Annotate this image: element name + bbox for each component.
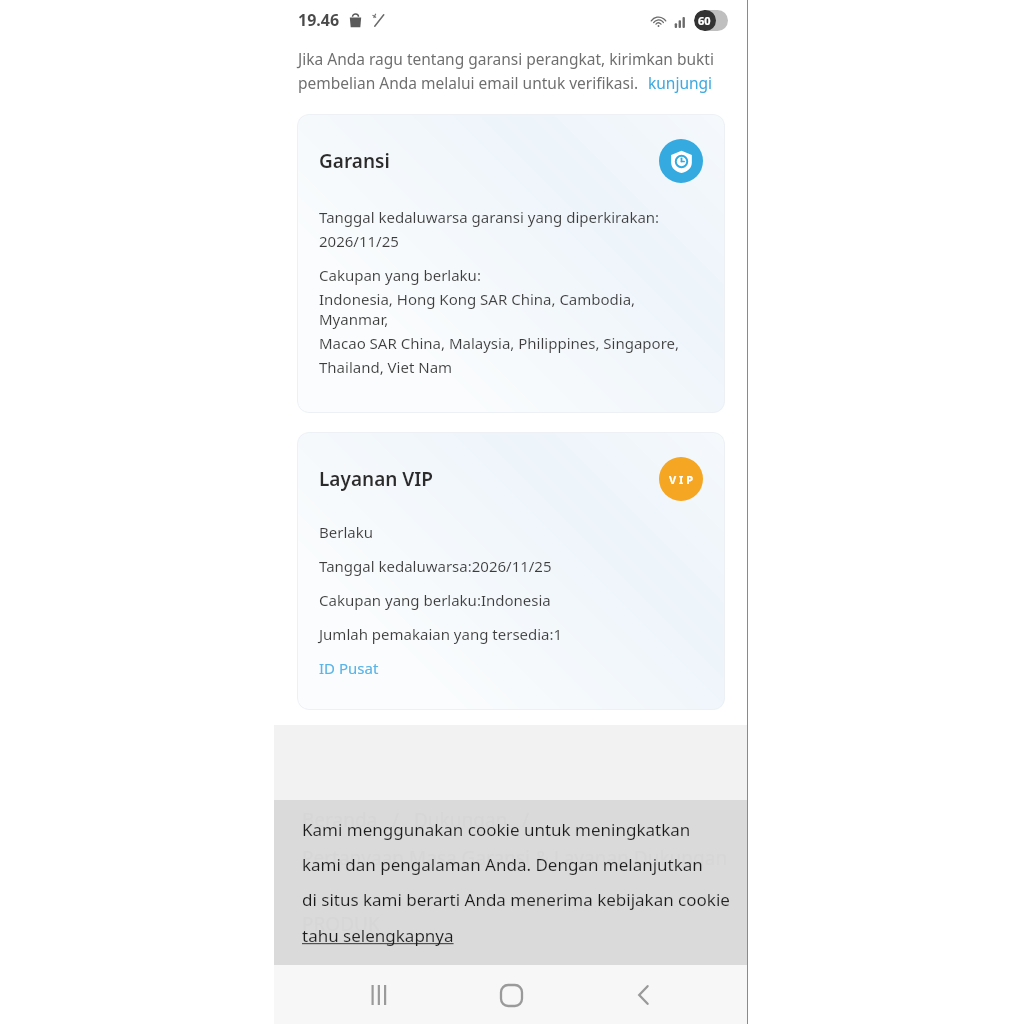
staticText: kami dan pengalaman Anda. Dengan melanju… <box>302 853 748 876</box>
staticText: Berlaku <box>319 522 373 542</box>
button[interactable]: tahu selengkapnya <box>302 924 454 947</box>
button[interactable]: Garansi <box>659 139 703 183</box>
staticText: / <box>522 807 530 833</box>
staticText: Cakupan yang berlaku: <box>319 265 481 285</box>
staticText: Beranda <box>302 807 378 833</box>
staticText: Layanan VIP <box>319 466 434 492</box>
staticText: Garansi <box>319 148 390 174</box>
staticText: ID Pusat <box>319 658 379 678</box>
staticText: Indonesia, Hong Kong SAR China, Cambodia… <box>319 289 703 329</box>
staticText: Macao SAR China, Malaysia, Philippines, … <box>319 333 680 353</box>
staticText: Tanggal kedaluwarsa:2026/11/25 <box>319 556 552 576</box>
staticText: Cakupan yang berlaku:Indonesia <box>319 590 551 610</box>
button[interactable]: Layanan VIP <box>297 432 725 710</box>
staticText: kunjungi <box>648 72 713 93</box>
staticText: 19.46 <box>298 9 340 31</box>
button[interactable]: Layanan VIP <box>659 457 703 501</box>
button[interactable]: kunjungi <box>648 72 713 93</box>
staticText: Kami menggunakan cookie untuk meningkatk… <box>302 818 748 841</box>
button[interactable]: Garansi <box>297 114 725 413</box>
staticText: tahu selengkapnya <box>302 924 454 947</box>
staticText: Tanggal kedaluwarsa garansi yang diperki… <box>319 207 660 227</box>
button[interactable]: ID Pusat <box>319 658 379 678</box>
staticText: / <box>392 807 400 833</box>
staticText: Thailand, Viet Nam <box>319 357 453 377</box>
staticText: di situs kami berarti Anda menerima kebi… <box>302 888 748 911</box>
button[interactable]: Recents <box>351 967 407 1023</box>
staticText: pembelian Anda melalui email untuk verif… <box>298 72 639 93</box>
staticText: PRODUK <box>302 911 380 937</box>
button[interactable]: Back <box>616 967 672 1023</box>
staticText: V I P <box>669 472 693 487</box>
staticText: Jumlah pemakaian yang tersedia:1 <box>319 624 563 644</box>
staticText: 2026/11/25 <box>319 231 399 251</box>
staticText: Jika Anda ragu tentang garansi perangkat… <box>298 48 714 69</box>
staticText: Pertanyaan Masa Garansi & Layanan Dukung… <box>302 845 728 871</box>
button[interactable]: Home <box>483 967 539 1023</box>
staticText: Dukungan <box>414 807 508 833</box>
staticText: 60 <box>698 13 711 28</box>
